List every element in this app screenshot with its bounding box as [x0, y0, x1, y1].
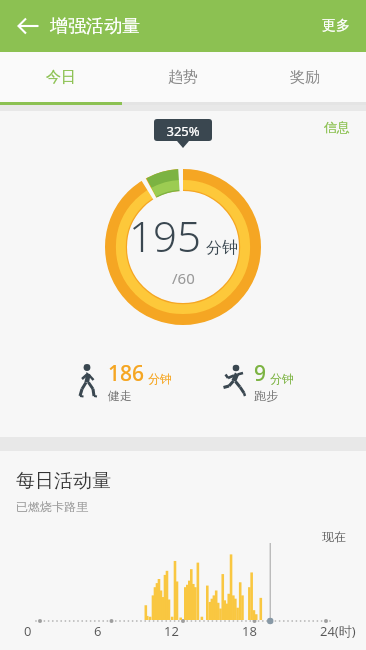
button[interactable]: 更多: [306, 9, 366, 43]
staticText: 增强活动量: [50, 15, 140, 38]
staticText: 6: [94, 622, 102, 640]
other: Running: [218, 362, 248, 400]
staticText: 分钟: [148, 371, 172, 386]
staticText: 趋势: [168, 68, 198, 87]
staticText: 健走: [108, 388, 132, 403]
button[interactable]: 趋势: [122, 52, 244, 102]
staticText: 今日: [46, 68, 76, 87]
staticText: 195: [129, 207, 201, 264]
staticText: 已燃烧卡路里: [16, 499, 88, 514]
button[interactable]: Running: [218, 359, 294, 403]
staticText: 18: [242, 622, 257, 640]
staticText: 奖励: [290, 68, 320, 87]
staticText: /60: [172, 268, 195, 288]
staticText: 现在: [322, 529, 346, 544]
staticText: 9: [254, 359, 267, 388]
staticText: 24(时): [320, 622, 356, 640]
button[interactable]: 信息: [308, 111, 366, 143]
staticText: 0: [24, 622, 32, 640]
staticText: 每日活动量: [16, 469, 111, 493]
staticText: 325%: [154, 122, 212, 140]
staticText: 分钟: [270, 371, 294, 386]
button[interactable]: Walking: [72, 359, 172, 403]
staticText: 186: [108, 359, 145, 388]
other: Walking: [72, 362, 102, 400]
staticText: 跑步: [254, 388, 278, 403]
button[interactable]: 奖励: [244, 52, 366, 102]
staticText: 信息: [324, 119, 350, 135]
button[interactable]: Back: [8, 6, 48, 46]
button[interactable]: 今日: [0, 52, 122, 102]
staticText: 更多: [322, 17, 350, 35]
staticText: 12: [164, 622, 179, 640]
staticText: 分钟: [206, 238, 238, 258]
